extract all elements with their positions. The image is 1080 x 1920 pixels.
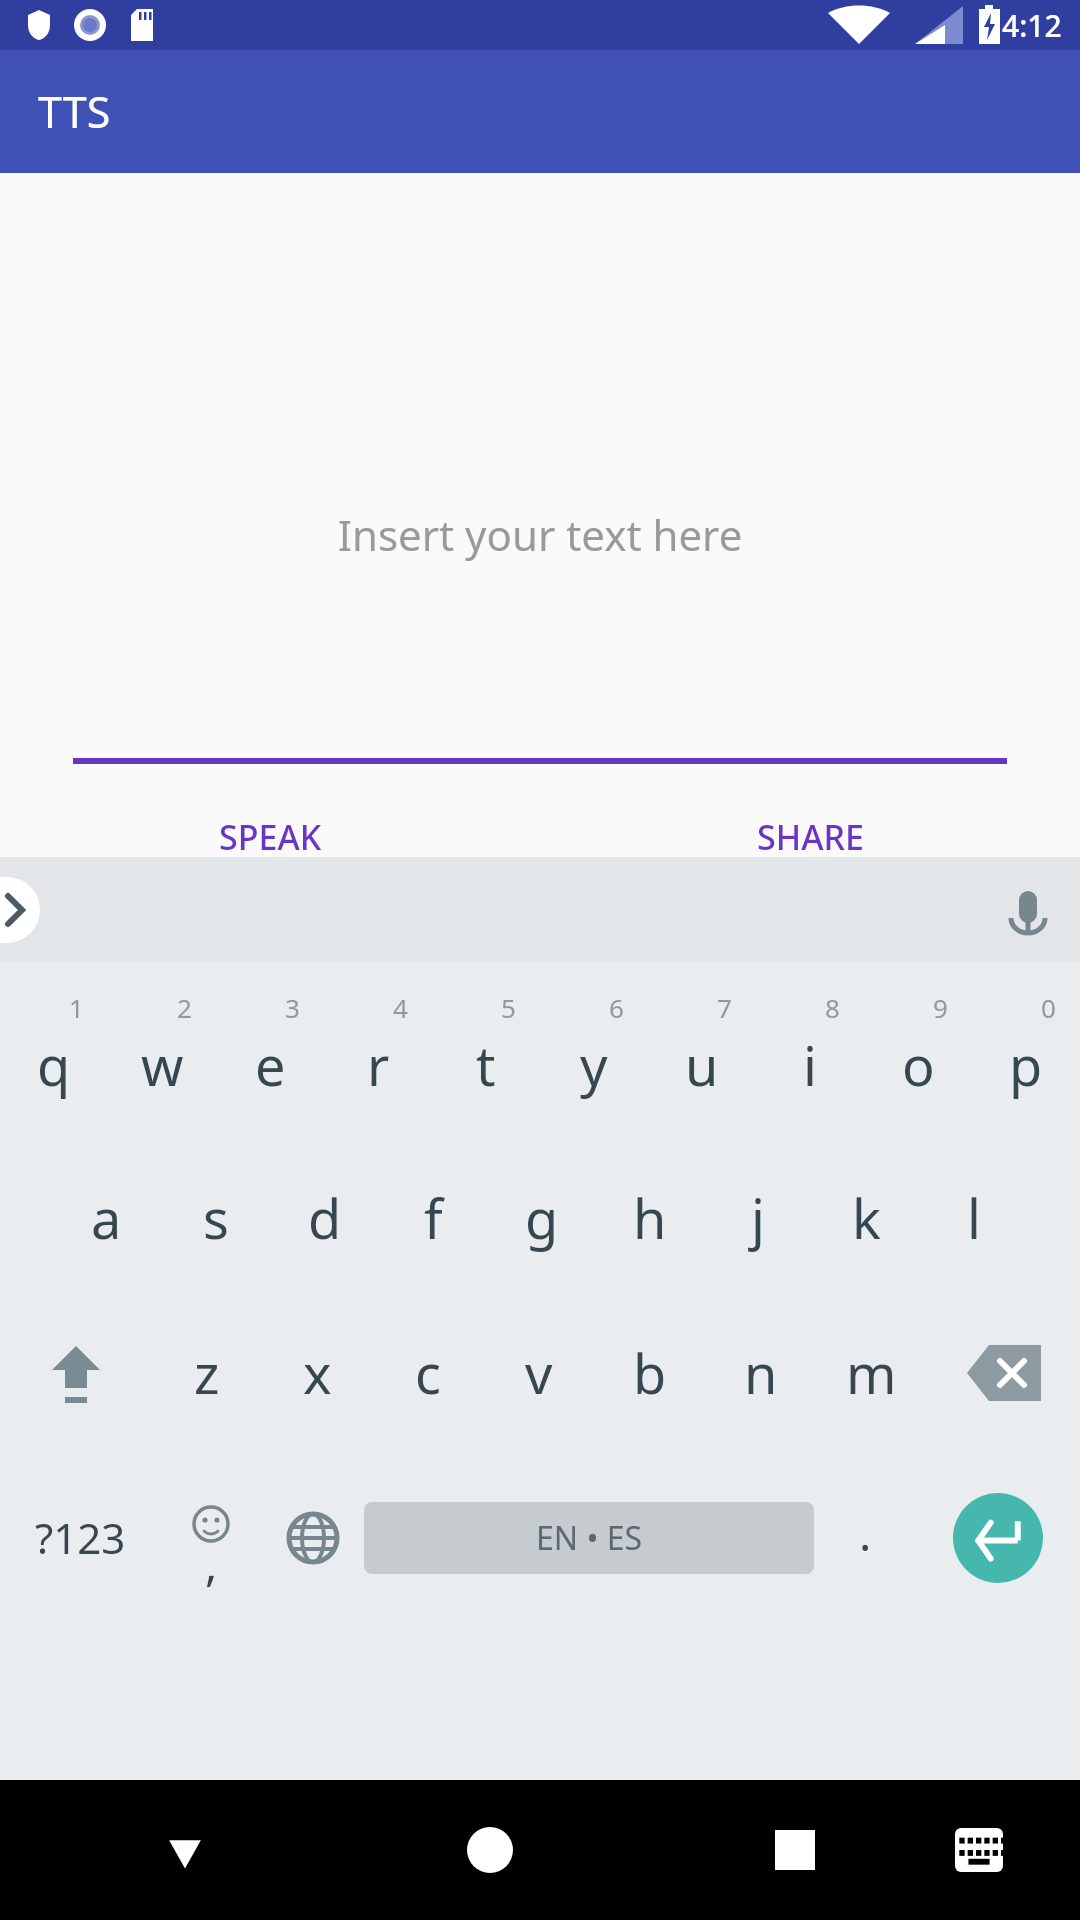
staticText: g	[525, 1181, 559, 1255]
staticText: a	[91, 1181, 122, 1255]
staticText: 8	[825, 990, 840, 1025]
button[interactable]: Voice input	[990, 872, 1066, 948]
button[interactable]: Space	[364, 1502, 814, 1574]
staticText: v	[525, 1336, 553, 1410]
staticText: 6	[609, 990, 624, 1025]
staticText: f	[424, 1181, 443, 1255]
button[interactable]: n	[705, 1295, 816, 1450]
staticText: l	[967, 1181, 981, 1255]
button[interactable]: g	[488, 1140, 596, 1295]
staticText: .	[859, 1502, 872, 1565]
button[interactable]: a	[52, 1140, 161, 1295]
button[interactable]: Enter	[953, 1493, 1043, 1583]
button[interactable]: Back	[130, 1795, 240, 1905]
staticText: ?123	[35, 1509, 126, 1566]
button[interactable]: k	[812, 1140, 920, 1295]
button[interactable]: Switch keyboard	[929, 1800, 1029, 1900]
button[interactable]: m	[816, 1295, 927, 1450]
staticText: u	[685, 1028, 719, 1102]
staticText: q	[37, 1028, 71, 1102]
button[interactable]: Shift	[0, 1295, 152, 1450]
button[interactable]: 9	[864, 970, 972, 1140]
button[interactable]: 8	[756, 970, 864, 1140]
staticText: o	[902, 1028, 935, 1102]
staticText: h	[633, 1181, 667, 1255]
button[interactable]: s	[161, 1140, 270, 1295]
button[interactable]: 7	[648, 970, 756, 1140]
button[interactable]: Backspace	[927, 1295, 1080, 1450]
staticText: m	[846, 1336, 897, 1410]
staticText: n	[744, 1336, 778, 1410]
button[interactable]: l	[920, 1140, 1028, 1295]
staticText: ,	[205, 1532, 218, 1595]
button[interactable]: b	[594, 1295, 705, 1450]
button[interactable]: Recent apps	[740, 1795, 850, 1905]
button[interactable]: ?123	[0, 1450, 160, 1625]
button[interactable]: 2	[108, 970, 216, 1140]
button[interactable]: 5	[432, 970, 540, 1140]
staticText: 4	[393, 990, 408, 1025]
staticText: e	[255, 1028, 286, 1102]
staticText: TTS	[38, 82, 111, 141]
button[interactable]: Emoji	[160, 1450, 262, 1625]
staticText: c	[415, 1336, 441, 1410]
staticText: j	[751, 1181, 765, 1255]
staticText: SHARE	[757, 814, 864, 860]
staticText: y	[580, 1028, 608, 1102]
button[interactable]: j	[704, 1140, 812, 1295]
staticText: 0	[1041, 990, 1056, 1025]
staticText: d	[308, 1181, 342, 1255]
button[interactable]: x	[262, 1295, 372, 1450]
staticText: SPEAK	[219, 814, 322, 860]
button[interactable]: c	[372, 1295, 483, 1450]
button[interactable]: SHARE	[540, 792, 1080, 882]
staticText: p	[1009, 1028, 1043, 1102]
staticText: b	[633, 1336, 667, 1410]
button[interactable]: 3	[216, 970, 324, 1140]
staticText: s	[203, 1181, 229, 1255]
staticText: i	[803, 1028, 817, 1102]
button[interactable]: v	[483, 1295, 594, 1450]
staticText: 4:12	[1002, 5, 1062, 46]
staticText: 1	[69, 990, 84, 1025]
staticText: t	[476, 1028, 496, 1102]
button[interactable]: 1	[0, 970, 108, 1140]
button[interactable]: Home	[435, 1795, 545, 1905]
staticText: 2	[177, 990, 192, 1025]
staticText: z	[194, 1336, 220, 1410]
button[interactable]: Insert your text here	[0, 506, 1080, 563]
button[interactable]: 4	[324, 970, 432, 1140]
button[interactable]: Change language	[262, 1450, 364, 1625]
button[interactable]: 6	[540, 970, 648, 1140]
button[interactable]: f	[379, 1140, 488, 1295]
button[interactable]: Expand suggestions	[0, 877, 40, 943]
button[interactable]: 0	[972, 970, 1080, 1140]
staticText: 7	[717, 990, 732, 1025]
button[interactable]: h	[596, 1140, 704, 1295]
staticText: k	[852, 1181, 881, 1255]
button[interactable]: d	[270, 1140, 379, 1295]
button[interactable]: .	[814, 1450, 916, 1625]
staticText: x	[303, 1336, 332, 1410]
staticText: w	[141, 1028, 184, 1102]
button[interactable]: SPEAK	[0, 792, 540, 882]
staticText: 5	[501, 990, 516, 1025]
staticText: 3	[285, 990, 300, 1025]
staticText: EN • ES	[536, 1516, 643, 1560]
button[interactable]: z	[152, 1295, 262, 1450]
staticText: 9	[933, 990, 948, 1025]
staticText: r	[367, 1028, 390, 1102]
